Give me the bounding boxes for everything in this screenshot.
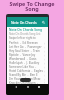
other: More options bbox=[43, 70, 46, 73]
staticText: Knockin On Heaven - Dylan bbox=[9, 81, 43, 84]
staticText: Hotel California - Eagles bbox=[9, 69, 43, 73]
staticText: Riptide - Vance Joy bbox=[9, 53, 36, 57]
button[interactable]: Let Her Go - Passenger bbox=[9, 45, 46, 49]
staticText: Swipe left or right to change song bbox=[9, 36, 46, 40]
button[interactable]: Hotel California - Eagles bbox=[9, 69, 46, 73]
other: More options bbox=[43, 62, 46, 65]
button[interactable]: I'm Yours - Jason Mraz bbox=[9, 77, 46, 81]
other: Back bbox=[15, 86, 17, 88]
button[interactable]: Knockin On Heaven - Dylan bbox=[9, 81, 46, 84]
other: More options bbox=[43, 66, 46, 69]
staticText: Song bbox=[25, 5, 39, 12]
other: More options bbox=[43, 50, 46, 53]
button[interactable]: Wonderwall - Oasis bbox=[9, 57, 46, 61]
other: More options bbox=[43, 42, 46, 45]
staticText: Note On Chords Song List bbox=[9, 32, 41, 36]
other: More options bbox=[43, 58, 46, 61]
staticText: Note On Chords bbox=[11, 20, 37, 25]
button[interactable]: Hey Soul Sister - Train bbox=[9, 49, 46, 53]
other: More options bbox=[43, 46, 46, 49]
staticText: Someone Like You - Adele bbox=[9, 65, 43, 69]
staticText: Note On Chords Song bbox=[9, 28, 42, 32]
staticText: Perfect - Ed Sheeran bbox=[9, 41, 38, 45]
button[interactable]: Someone Like You - Adele bbox=[9, 65, 46, 69]
button[interactable]: Hallelujah - J. Buckley bbox=[9, 61, 46, 65]
button[interactable]: Note On Chords bbox=[7, 17, 48, 27]
staticText: Swipe To Change bbox=[9, 0, 55, 7]
button[interactable]: Riptide - Vance Joy bbox=[9, 53, 46, 57]
other: More options bbox=[43, 78, 46, 81]
staticText: Stand By Me - Ben E King bbox=[9, 73, 43, 77]
button[interactable]: Stand By Me - Ben E King bbox=[9, 73, 46, 77]
other: More options bbox=[43, 54, 46, 57]
staticText: Wonderwall - Oasis bbox=[9, 57, 37, 61]
staticText: Let Her Go - Passenger bbox=[9, 45, 42, 49]
button[interactable]: Perfect - Ed Sheeran bbox=[9, 41, 46, 45]
staticText: Hallelujah - J. Buckley bbox=[9, 61, 40, 65]
other: More options bbox=[43, 81, 46, 84]
other: Search bbox=[42, 21, 45, 24]
staticText: I'm Yours - Jason Mraz bbox=[9, 77, 41, 81]
staticText: Hey Soul Sister - Train bbox=[9, 49, 40, 53]
other: More options bbox=[43, 74, 46, 77]
